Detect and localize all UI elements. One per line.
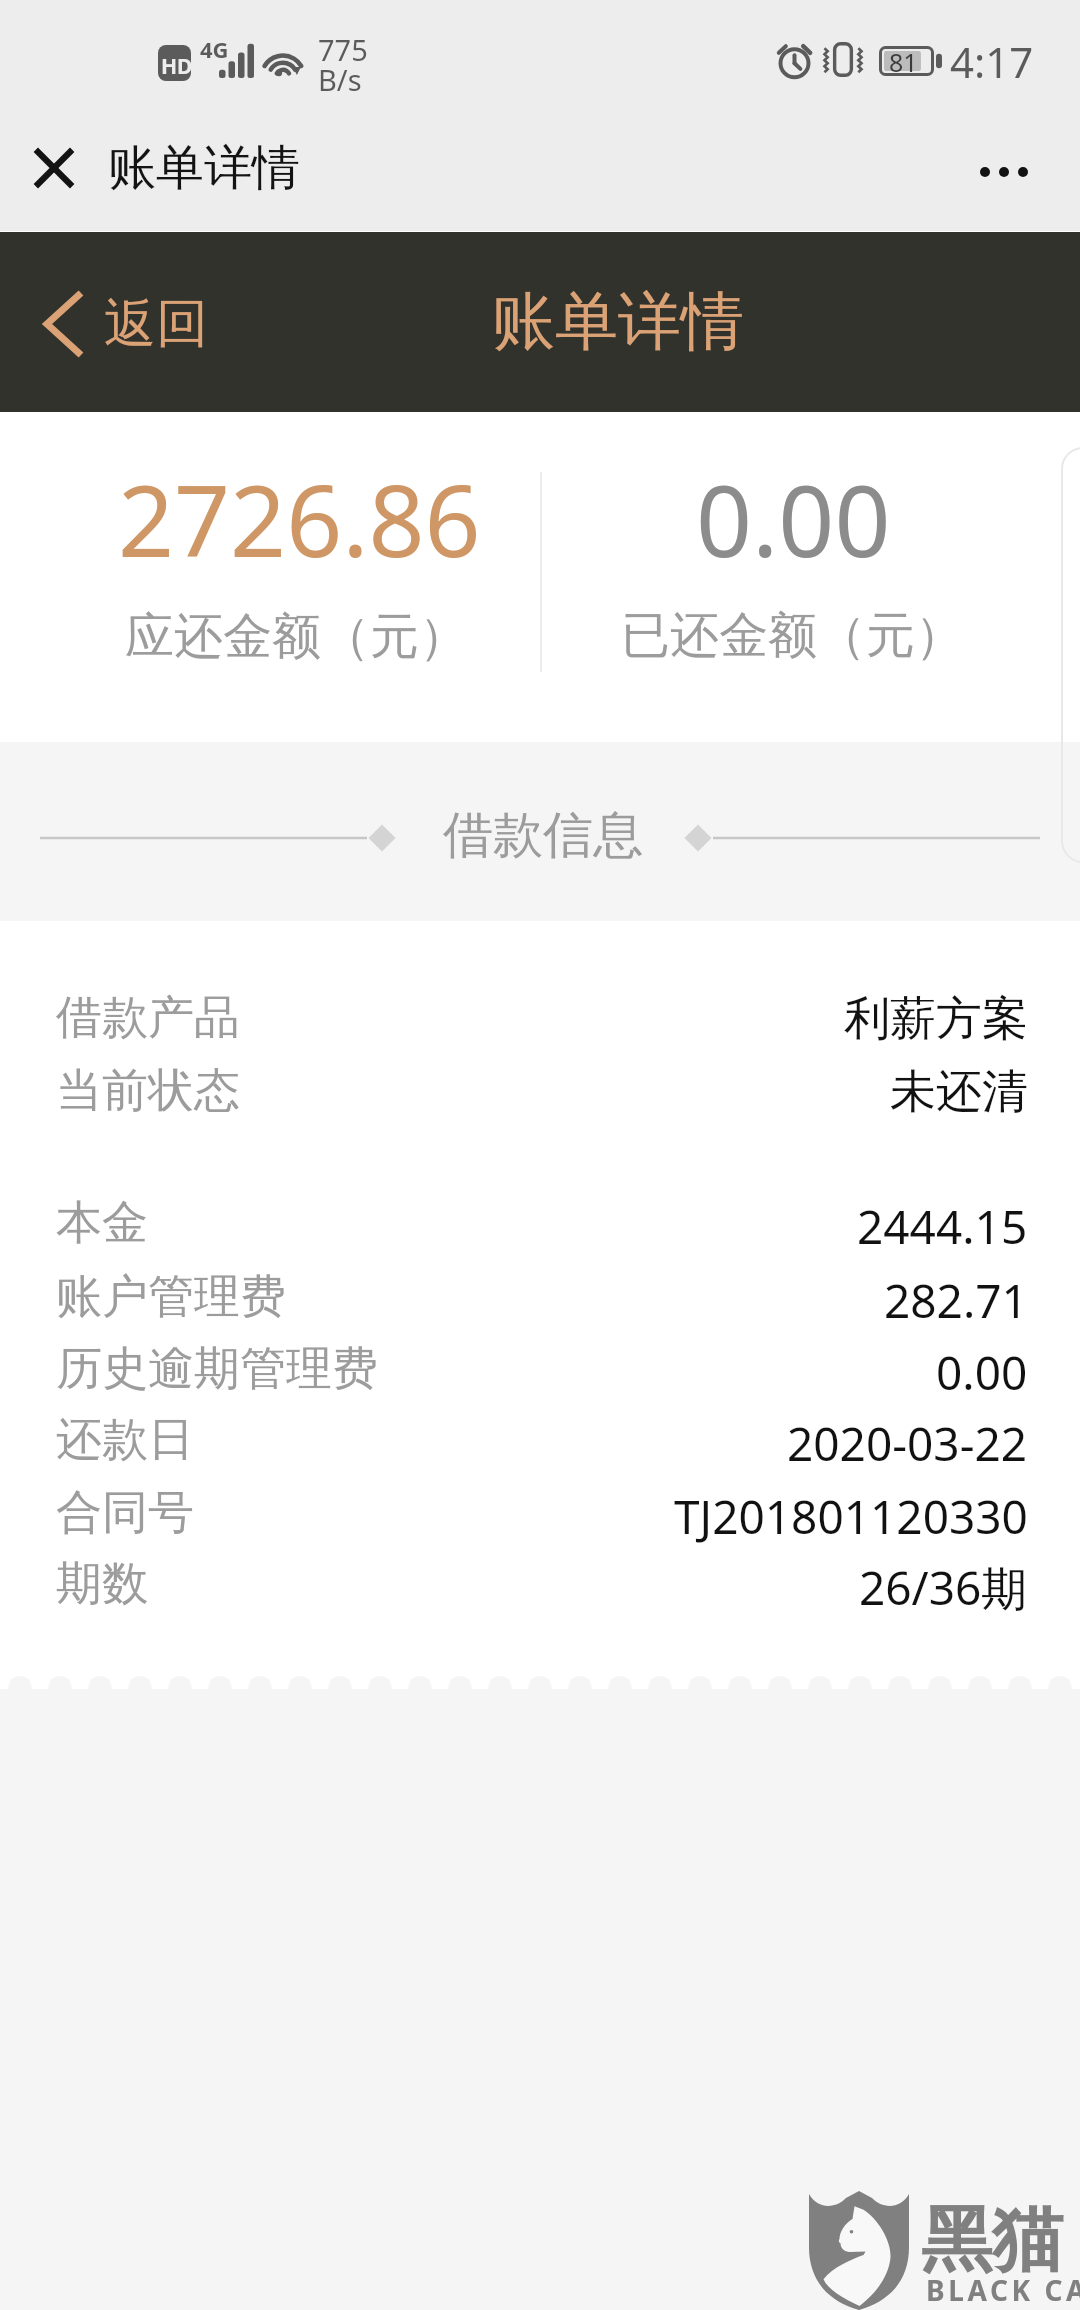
staticText: 2444.15 [857, 1195, 1028, 1258]
staticText: 775 B/s [318, 30, 368, 99]
staticText: 借款信息 [443, 804, 643, 867]
staticText: 已还金额（元） [621, 605, 964, 667]
staticText: 期数 [56, 1555, 148, 1613]
staticText: 应还金额（元） [125, 606, 468, 668]
staticText: 26/36期 [859, 1556, 1028, 1619]
button[interactable]: More options [955, 130, 1055, 210]
staticText: BLACK CAT [926, 2271, 1080, 2309]
staticText: 合同号 [56, 1484, 194, 1542]
staticText: 当前状态 [56, 1062, 240, 1120]
staticText: 还款日 [56, 1411, 194, 1469]
button[interactable]: 当前状态 [0, 1062, 1080, 1135]
staticText: 未还清 [890, 1063, 1028, 1121]
staticText: TJ201801120330 [674, 1485, 1028, 1548]
staticText: 账户管理费 [56, 1268, 286, 1326]
staticText: 0.00 [936, 1341, 1028, 1404]
staticText: 2020-03-22 [787, 1412, 1028, 1475]
staticText: 0.00 [696, 452, 891, 585]
staticText: 4G [200, 34, 229, 64]
button[interactable]: Back 返回 [30, 270, 230, 378]
staticText: 返回 [104, 291, 208, 357]
button[interactable]: 历史逾期管理费 [0, 1340, 1080, 1413]
staticText: 2726.86 [118, 452, 481, 585]
button[interactable]: 期数 [0, 1555, 1080, 1628]
staticText: 282.71 [884, 1269, 1028, 1332]
button[interactable]: 还款日 [0, 1411, 1080, 1484]
button[interactable]: 本金 [0, 1194, 1080, 1267]
staticText: 利薪方案 [844, 990, 1028, 1048]
staticText: HD [161, 52, 193, 81]
staticText: 历史逾期管理费 [56, 1340, 378, 1398]
button[interactable]: 账户管理费 [0, 1268, 1080, 1341]
button[interactable]: 合同号 [0, 1484, 1080, 1557]
button[interactable]: 借款产品 [0, 989, 1080, 1062]
staticText: 4:17 [950, 33, 1034, 90]
staticText: 81 [889, 45, 918, 79]
staticText: 账单详情 [108, 138, 300, 198]
staticText: 账单详情 [492, 282, 744, 361]
staticText: 黑猫 [921, 2196, 1063, 2285]
staticText: 本金 [56, 1194, 148, 1252]
staticText: 借款产品 [56, 989, 240, 1047]
button[interactable]: Close [14, 128, 94, 208]
